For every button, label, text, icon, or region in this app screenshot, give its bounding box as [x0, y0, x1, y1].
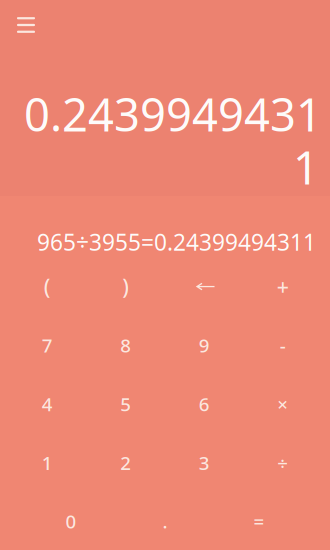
button[interactable]: 9 [165, 316, 243, 375]
staticText: 4 [42, 392, 53, 416]
staticText: 6 [199, 392, 210, 416]
button[interactable]: 8 [86, 316, 165, 375]
button[interactable]: 3 [165, 433, 243, 492]
button[interactable]: 0 [24, 492, 118, 550]
button[interactable]: = [212, 492, 306, 550]
staticText: 5 [120, 392, 131, 416]
button[interactable]: Menu [4, 4, 48, 46]
button[interactable]: 2 [86, 433, 165, 492]
staticText: ÷ [277, 450, 288, 475]
staticText: - [280, 333, 286, 358]
button[interactable]: 1 [8, 433, 86, 492]
button[interactable]: + [243, 257, 322, 316]
button[interactable]: 4 [8, 375, 86, 433]
staticText: 2 [120, 450, 131, 475]
staticText: 3 [199, 450, 210, 475]
staticText: 1 [42, 450, 53, 475]
button[interactable]: Backspace [165, 257, 243, 316]
button[interactable]: 7 [8, 316, 86, 375]
staticText: 965÷3955=0.24399494311 [37, 227, 316, 257]
staticText: 0.2439949431 [24, 84, 322, 144]
staticText: . [162, 509, 167, 534]
staticText: 8 [120, 333, 131, 358]
button[interactable]: ÷ [243, 433, 322, 492]
staticText: ( [44, 272, 51, 301]
staticText: ) [122, 272, 129, 301]
staticText: 1 [293, 137, 319, 197]
button[interactable]: . [118, 492, 212, 550]
button[interactable]: × [243, 375, 322, 433]
staticText: 7 [42, 333, 53, 358]
button[interactable]: ( [8, 257, 86, 316]
staticText: + [277, 272, 289, 301]
staticText: = [253, 509, 264, 534]
staticText: × [277, 392, 288, 416]
button[interactable]: - [243, 316, 322, 375]
button[interactable]: 5 [86, 375, 165, 433]
staticText: 9 [199, 333, 210, 358]
staticText: 0 [65, 509, 76, 534]
button[interactable]: 6 [165, 375, 243, 433]
button[interactable]: ) [86, 257, 165, 316]
